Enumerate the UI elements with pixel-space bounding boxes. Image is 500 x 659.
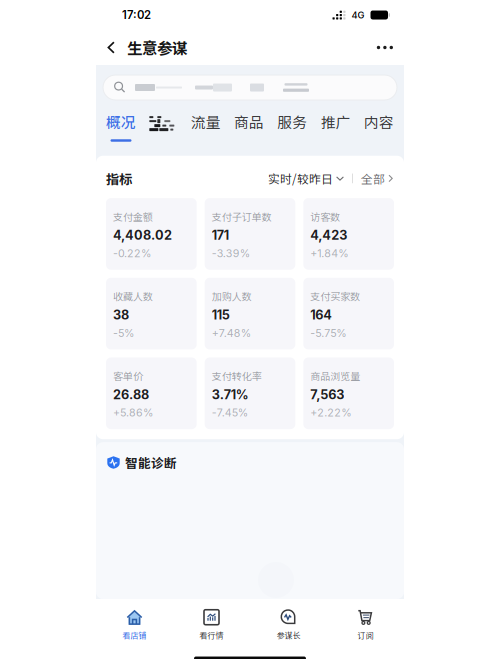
button[interactable]: More — [372, 35, 398, 60]
staticText: 商品 — [234, 111, 264, 132]
button[interactable]: 支付买家数 — [303, 278, 394, 349]
button[interactable]: 参谋长 — [250, 602, 327, 647]
staticText: 3.71% — [212, 387, 249, 402]
button[interactable]: 看店铺 — [96, 602, 173, 647]
button[interactable]: 访客数 — [303, 198, 394, 270]
button[interactable]: 商品浏览量 — [303, 357, 394, 429]
staticText: 指标 — [106, 169, 132, 188]
staticText: 客单价 — [113, 368, 143, 383]
button[interactable]: 加购人数 — [205, 278, 295, 349]
staticText: -0.22% — [113, 247, 151, 260]
button[interactable]: 客单价 — [106, 357, 197, 429]
staticText: 内容 — [364, 111, 394, 132]
staticText: 26.88 — [113, 387, 149, 402]
staticText: 4,408.02 — [113, 227, 172, 243]
staticText: 实时/较昨日 — [268, 170, 333, 187]
button[interactable] — [96, 65, 404, 100]
button[interactable]: 支付转化率 — [205, 357, 295, 429]
staticText: 164 — [310, 307, 332, 322]
staticText: 看行情 — [199, 629, 223, 641]
staticText: 服务 — [277, 111, 307, 132]
staticText: 商品浏览量 — [310, 368, 360, 383]
staticText: +7.48% — [212, 327, 251, 339]
staticText: 支付转化率 — [212, 368, 262, 383]
button[interactable]: 实时/较昨日 — [268, 170, 344, 187]
button[interactable]: 收藏人数 — [106, 278, 197, 349]
button[interactable] — [149, 117, 177, 136]
staticText: +5.86% — [113, 406, 153, 419]
button[interactable]: 推广 — [321, 111, 351, 142]
staticText: 订阅 — [357, 629, 373, 641]
staticText: 访客数 — [310, 209, 340, 223]
button[interactable]: 看行情 — [173, 602, 250, 647]
staticText: 17:02 — [122, 8, 151, 22]
button[interactable]: 全部 — [361, 170, 394, 187]
button[interactable]: 流量 — [191, 111, 221, 142]
staticText: 加购人数 — [212, 289, 252, 303]
button[interactable]: 概况 — [106, 111, 136, 142]
button[interactable]: 服务 — [277, 111, 307, 142]
staticText: 支付买家数 — [310, 289, 360, 303]
staticText: 收藏人数 — [113, 289, 153, 303]
staticText: 全部 — [361, 170, 385, 187]
staticText: 支付子订单数 — [212, 209, 272, 223]
staticText: -3.39% — [212, 247, 250, 260]
staticText: -5% — [113, 327, 134, 339]
staticText: 4,423 — [310, 227, 347, 243]
staticText: 智能诊断 — [125, 453, 177, 471]
staticText: 4G — [351, 9, 364, 21]
staticText: -5.75% — [310, 327, 346, 339]
button[interactable]: 商品 — [234, 111, 264, 142]
staticText: 支付金额 — [113, 209, 153, 223]
button[interactable]: 支付子订单数 — [205, 198, 295, 270]
button[interactable]: 支付金额 — [106, 198, 197, 270]
staticText: 生意参谋 — [127, 36, 187, 59]
staticText: -7.45% — [212, 406, 248, 419]
staticText: 看店铺 — [122, 629, 146, 641]
button[interactable]: 内容 — [364, 111, 394, 142]
staticText: 流量 — [191, 111, 221, 132]
button[interactable]: Back — [102, 32, 120, 63]
staticText: 171 — [212, 227, 229, 243]
staticText: +2.22% — [310, 406, 351, 419]
staticText: 38 — [113, 307, 129, 322]
staticText: 参谋长 — [276, 629, 300, 641]
staticText: 推广 — [321, 111, 351, 132]
staticText: 概况 — [106, 111, 136, 132]
staticText: +1.84% — [310, 247, 348, 260]
staticText: 115 — [212, 307, 230, 322]
button[interactable]: 订阅 — [327, 602, 404, 647]
staticText: 7,563 — [310, 387, 344, 402]
